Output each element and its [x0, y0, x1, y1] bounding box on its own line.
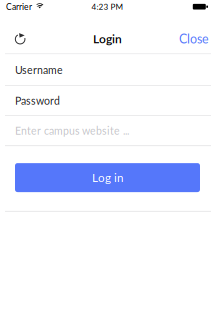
staticText: Username — [15, 64, 63, 76]
staticText: Login — [93, 32, 122, 46]
button[interactable]: Password — [0, 86, 215, 116]
staticText: Password — [15, 94, 60, 107]
staticText: Log in — [92, 171, 123, 184]
button[interactable]: Username — [0, 54, 215, 86]
button[interactable]: Log in — [15, 163, 200, 192]
button[interactable]: Reload — [0, 25, 31, 53]
button[interactable]: Enter campus website ... — [0, 116, 215, 146]
staticText: Close — [179, 31, 209, 46]
button[interactable]: Close — [168, 23, 215, 54]
staticText: 4:23 PM — [91, 2, 123, 11]
staticText: Enter campus website ... — [15, 124, 129, 137]
staticText: Carrier — [6, 2, 32, 12]
